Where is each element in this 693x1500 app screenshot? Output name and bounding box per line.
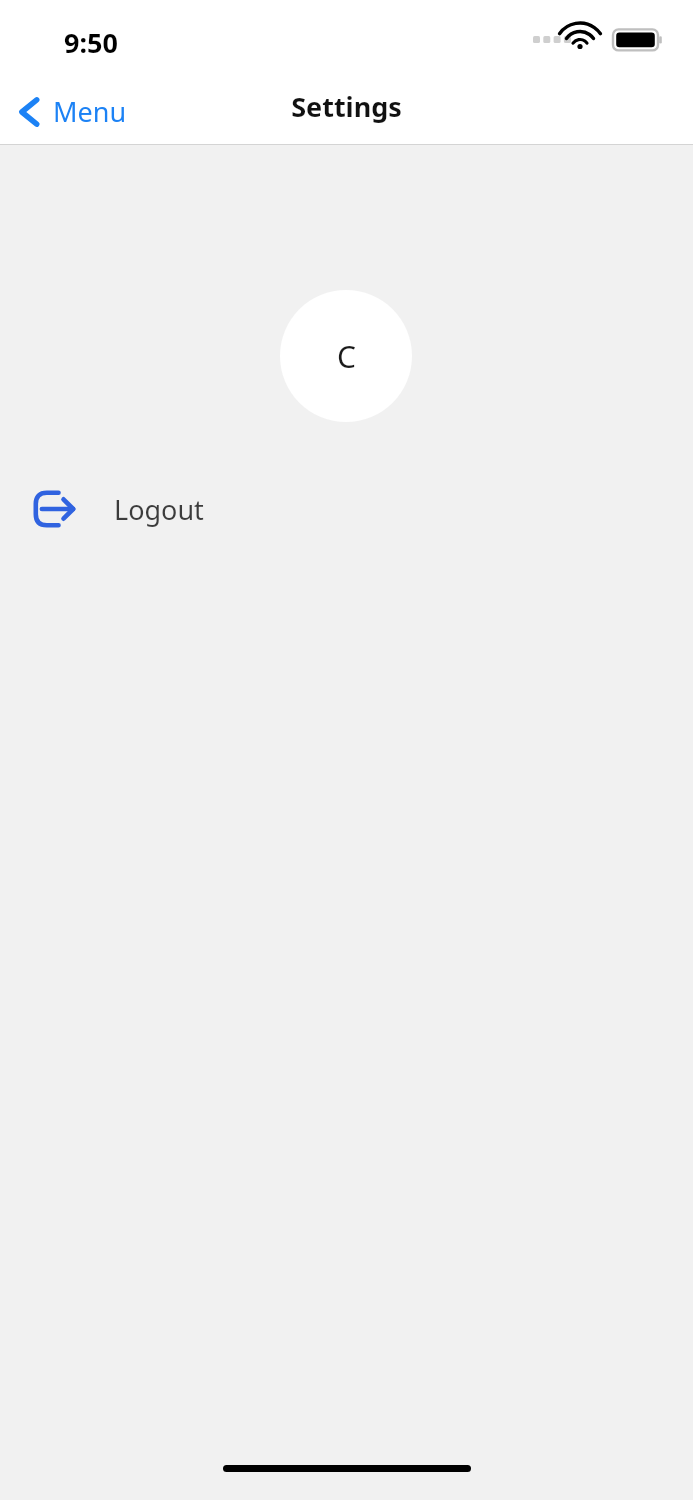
button[interactable]: Menu — [0, 85, 139, 138]
staticText: C — [337, 336, 356, 377]
staticText: Logout — [114, 491, 204, 528]
staticText: 9:50 — [64, 24, 118, 61]
staticText: Menu — [53, 93, 127, 130]
button[interactable]: C — [280, 290, 412, 422]
button[interactable]: Logout — [0, 478, 693, 540]
other: Logout — [33, 490, 77, 528]
staticText: Settings — [291, 88, 402, 125]
